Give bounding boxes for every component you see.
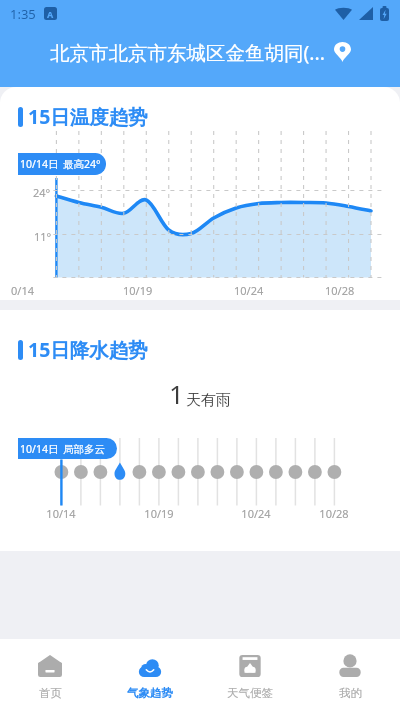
staticText: 天有雨 <box>186 391 231 410</box>
other: Location <box>334 42 351 62</box>
button[interactable]: 北京市北京市东城区金鱼胡同(... <box>0 26 400 78</box>
staticText: 天气便签 <box>227 686 273 700</box>
staticText: 10/28 <box>319 506 349 521</box>
staticText: 10/19 <box>123 283 153 298</box>
staticText: 我的 <box>339 686 362 700</box>
staticText: 10/28 <box>325 283 355 298</box>
staticText: A <box>47 8 54 20</box>
button[interactable]: 天气便签 <box>200 639 300 712</box>
staticText: 首页 <box>39 686 62 700</box>
staticText: 10/19 <box>144 506 174 521</box>
staticText: 北京市北京市东城区金鱼胡同(... <box>50 39 326 66</box>
button[interactable]: 我的 <box>300 639 400 712</box>
staticText: 局部多云 <box>63 443 105 456</box>
staticText: 11° <box>34 229 52 244</box>
staticText: 1:35 <box>10 5 36 23</box>
button[interactable]: 气象趋势 <box>100 639 200 712</box>
staticText: 24° <box>33 185 51 200</box>
staticText: 10/14日 <box>20 157 59 171</box>
staticText: 15日温度趋势 <box>28 103 148 130</box>
button[interactable]: 首页 <box>0 639 100 712</box>
staticText: 最高24° <box>63 157 101 171</box>
staticText: 10/14 <box>46 506 76 521</box>
staticText: 0/14 <box>11 283 34 298</box>
staticText: 15日降水趋势 <box>28 336 148 363</box>
staticText: 1 <box>169 376 184 411</box>
staticText: 10/14日 <box>20 442 59 456</box>
staticText: 气象趋势 <box>127 686 173 700</box>
staticText: 10/24 <box>234 283 264 298</box>
staticText: 10/24 <box>241 506 271 521</box>
